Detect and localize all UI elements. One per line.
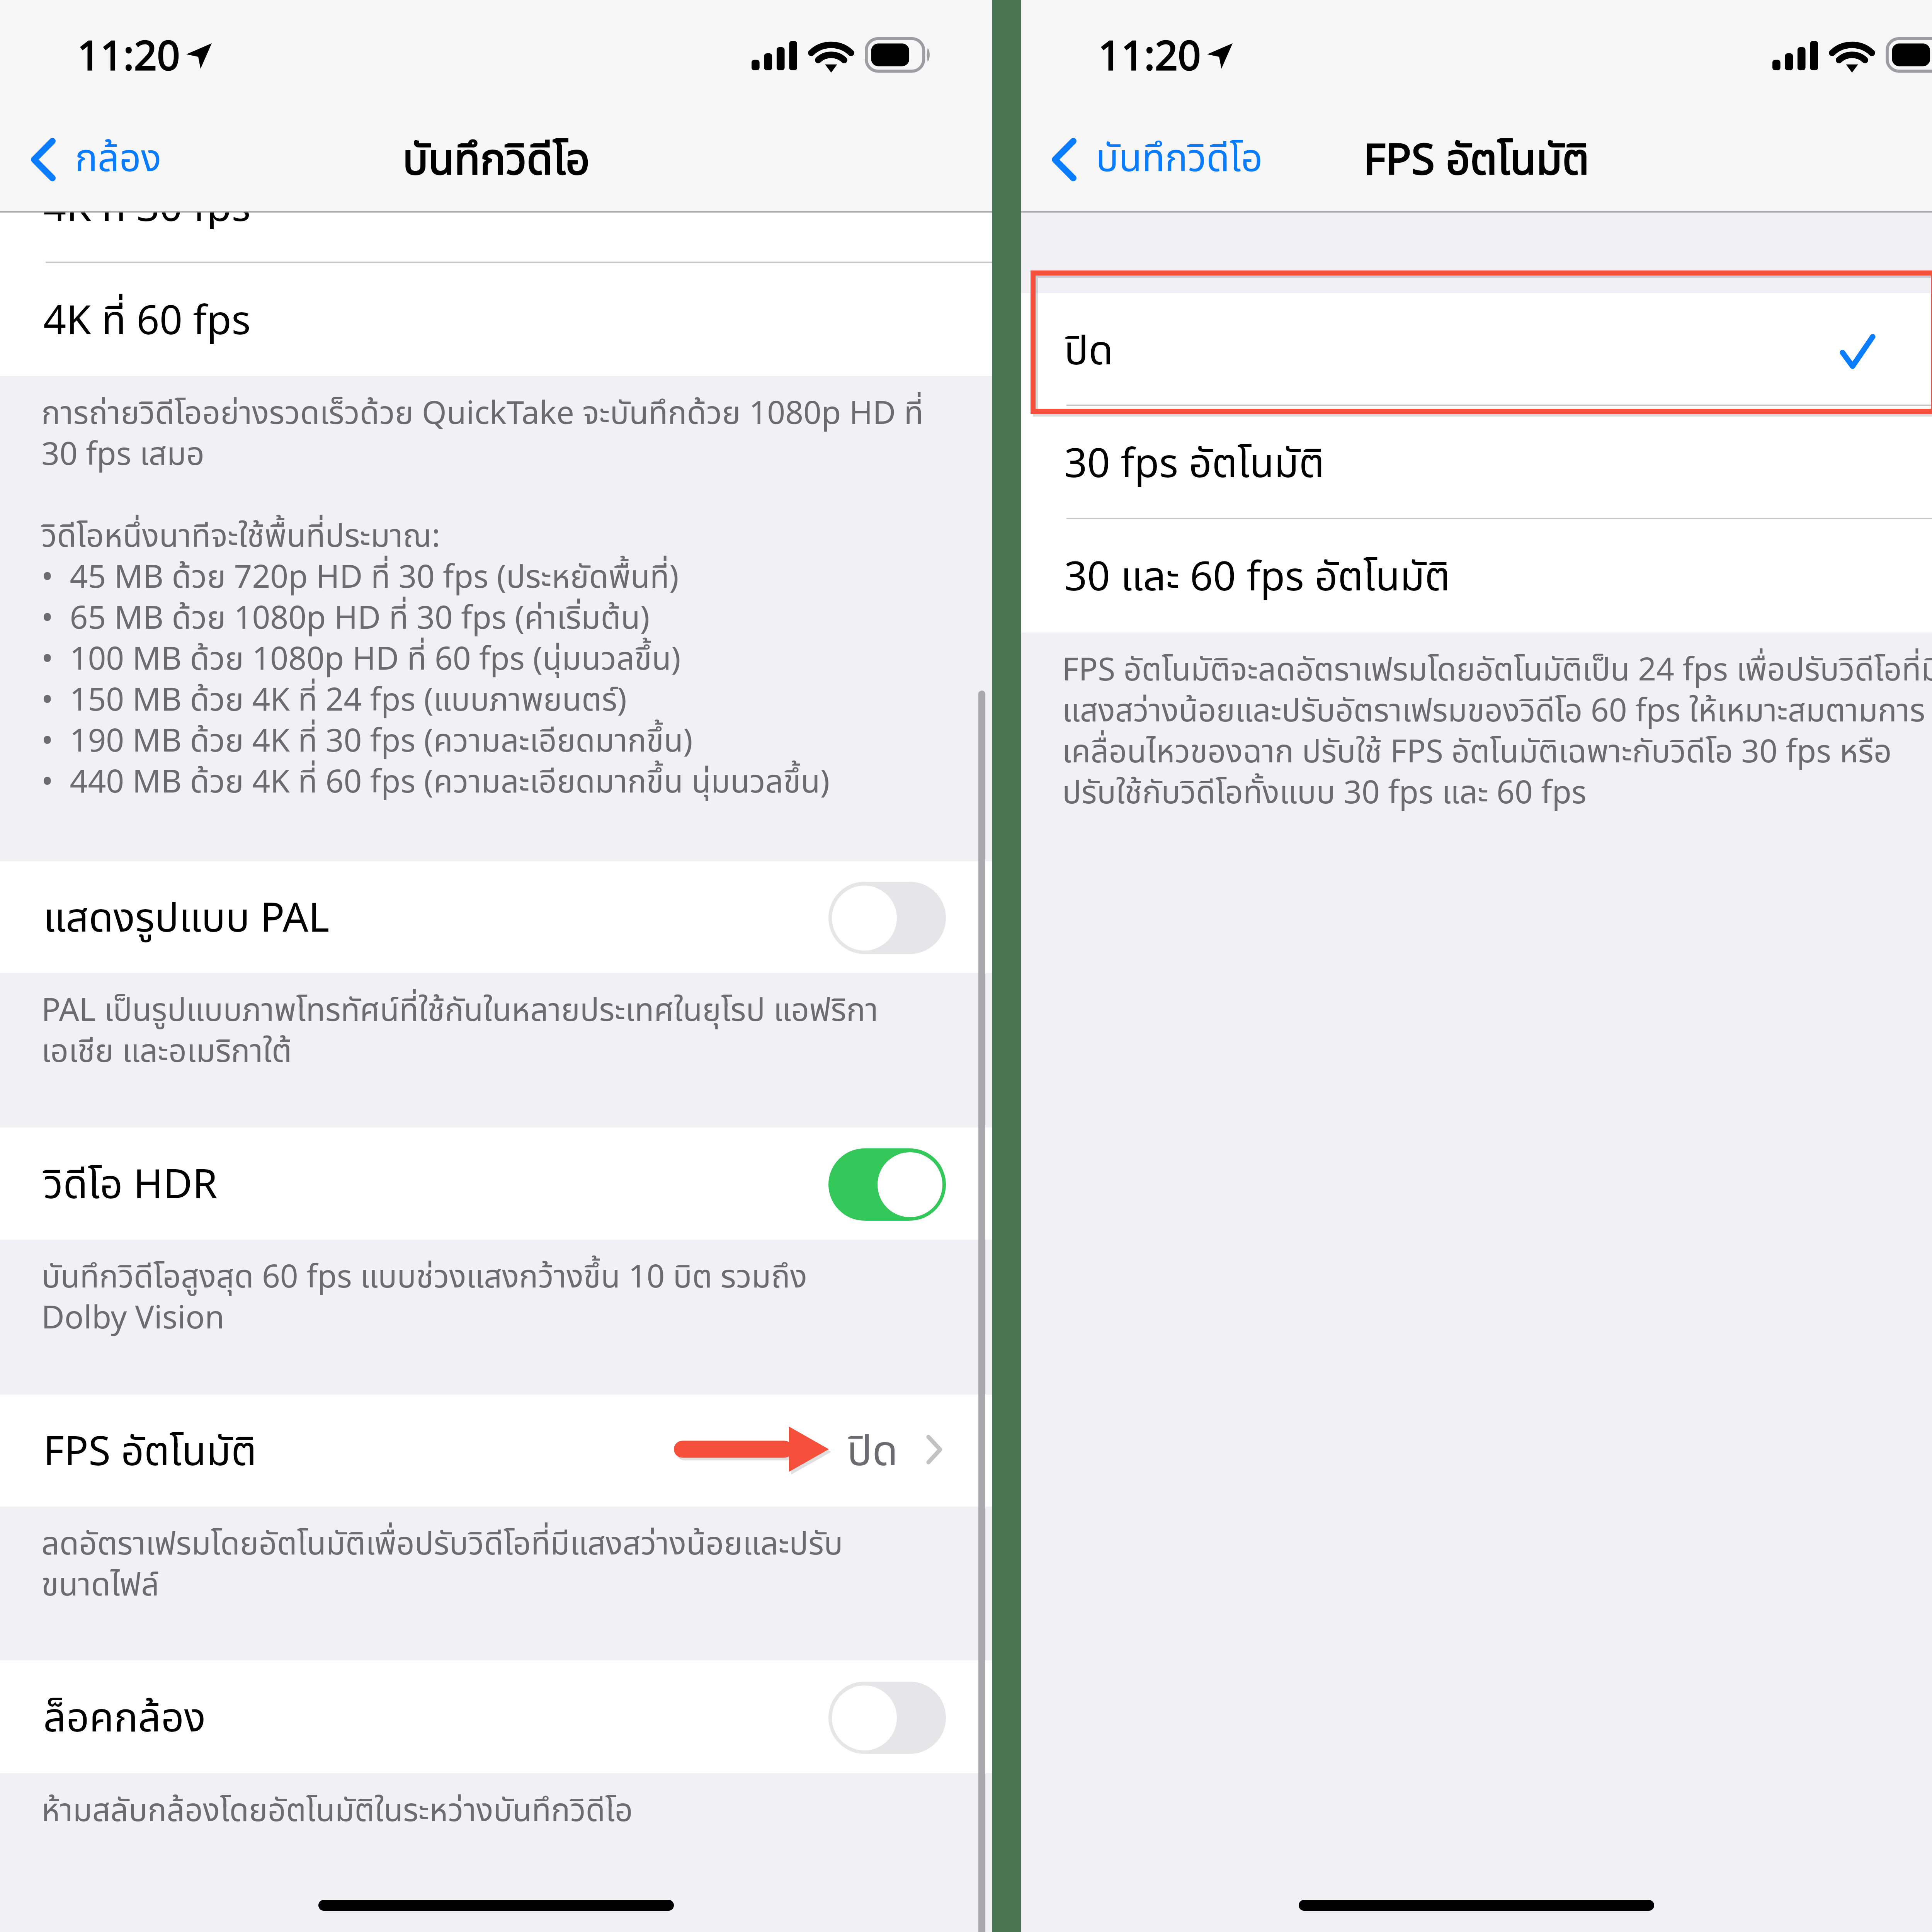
staticText: FPS อัตโนมัติ xyxy=(43,1423,257,1483)
other: More xyxy=(926,1435,942,1464)
staticText: FPS อัตโนมัติจะลดอัตราเฟรมโดยอัตโนมัติเป… xyxy=(1062,652,1932,816)
staticText: ปิด xyxy=(847,1421,898,1484)
staticText: ปิด xyxy=(1064,322,1113,383)
other: Selected xyxy=(1840,334,1875,369)
staticText: 30 และ 60 fps อัตโนมัติ xyxy=(1064,548,1451,609)
staticText: บันทึกวิดีโอ xyxy=(403,129,590,193)
staticText: บันทึกวิดีโอ xyxy=(1096,131,1263,188)
staticText: บันทึกวิดีโอสูงสุด 60 fps แบบช่วงแสงกว้า… xyxy=(41,1259,969,1341)
staticText: กล้อง xyxy=(75,131,162,188)
button[interactable]: วิดีโอ HDR xyxy=(0,1128,992,1240)
button[interactable]: แสดงรูปแบบ PAL xyxy=(0,861,992,973)
staticText: FPS อัตโนมัติ xyxy=(1364,129,1589,193)
staticText: ห้ามสลับกล้องโดยอัตโนมัติในระหว่างบันทึก… xyxy=(41,1793,969,1833)
button[interactable]: 30 และ 60 fps อัตโนมัติ xyxy=(1021,519,1932,633)
staticText: 11:20 xyxy=(1098,27,1201,88)
button[interactable]: บันทึกวิดีโอ xyxy=(1052,111,1263,208)
staticText: ลดอัตราเฟรมโดยอัตโนมัติเพื่อปรับวิดีโอที… xyxy=(41,1526,969,1608)
button[interactable]: ล็อคกล้อง xyxy=(0,1660,992,1773)
staticText: 4K ที่ 30 fps xyxy=(43,213,251,229)
staticText: วิดีโอ HDR xyxy=(43,1156,218,1216)
button[interactable]: FPS อัตโนมัติ xyxy=(0,1395,992,1507)
staticText: 4K ที่ 60 fps xyxy=(43,292,251,352)
button[interactable]: 4K ที่ 30 fps xyxy=(0,213,992,263)
button[interactable]: ปิด xyxy=(1021,293,1932,406)
staticText: การถ่ายวิดีโออย่างรวดเร็วด้วย QuickTake … xyxy=(41,395,969,805)
staticText: 11:20 xyxy=(77,27,180,88)
button[interactable]: กล้อง xyxy=(31,111,162,208)
staticText: 30 fps อัตโนมัติ xyxy=(1064,435,1325,495)
staticText: ล็อคกล้อง xyxy=(43,1689,206,1750)
button[interactable]: 30 fps อัตโนมัติ xyxy=(1021,406,1932,519)
button[interactable]: 4K ที่ 60 fps xyxy=(0,263,992,376)
staticText: PAL เป็นรูปแบบภาพโทรทัศน์ที่ใช้กันในหลาย… xyxy=(41,992,969,1074)
staticText: แสดงรูปแบบ PAL xyxy=(43,889,330,950)
